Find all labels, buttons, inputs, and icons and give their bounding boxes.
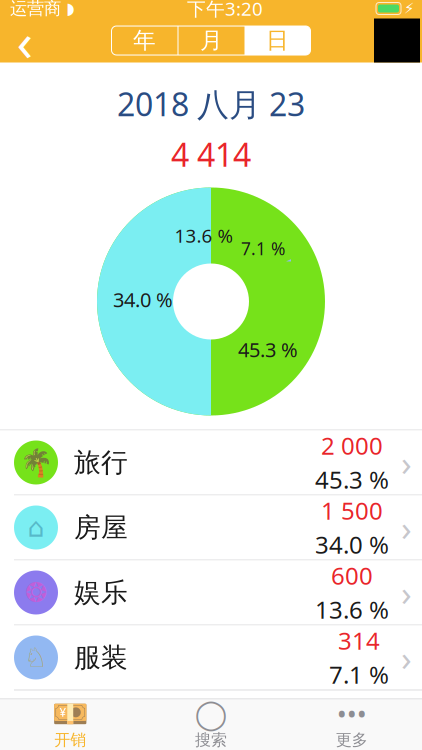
button[interactable]: 🌴	[0, 430, 422, 495]
button[interactable]: ◯	[141, 699, 281, 750]
staticText: 房屋	[74, 511, 128, 544]
staticText: ❂	[25, 577, 47, 608]
button[interactable]: 年	[111, 26, 177, 55]
staticText: 4 414	[171, 133, 251, 175]
button[interactable]: •••	[281, 699, 422, 750]
staticText: 600	[331, 560, 373, 591]
staticText: ◗	[66, 0, 74, 18]
staticText: 日	[266, 27, 289, 54]
staticText: ♘	[24, 642, 48, 673]
staticText: ›	[401, 504, 412, 550]
staticText: 7.1 %	[329, 658, 389, 690]
staticText: 旅行	[74, 446, 128, 479]
staticText: ‹	[16, 5, 33, 76]
staticText: 运营商	[10, 0, 61, 19]
staticText: 年	[133, 27, 156, 54]
button[interactable]: 日	[244, 26, 310, 55]
staticText: 开销	[54, 730, 86, 750]
staticText: 月	[200, 27, 223, 54]
staticText: 1 500	[321, 495, 383, 526]
button[interactable]: 💴	[0, 699, 141, 750]
staticText: 娱乐	[74, 576, 128, 609]
staticText: 13.6 %	[174, 223, 233, 248]
staticText: •••	[337, 696, 367, 732]
staticText: 2 000	[321, 430, 383, 461]
staticText: 2018 八月 23	[117, 82, 305, 125]
staticText: ›	[401, 569, 412, 615]
staticText: 13.6 %	[315, 593, 389, 625]
staticText: ⚡︎	[404, 0, 414, 17]
staticText: 搜索	[195, 730, 227, 750]
staticText: ◯	[194, 697, 227, 731]
staticText: ⌂	[27, 512, 44, 543]
button[interactable]: ⌂	[0, 495, 422, 560]
staticText: 🌴	[19, 447, 52, 478]
staticText: ›	[401, 439, 412, 485]
staticText: 7.1 %	[241, 237, 285, 260]
staticText: ›	[401, 634, 412, 680]
staticText: 45.3 %	[238, 336, 298, 363]
staticText: 更多	[336, 730, 368, 750]
staticText: 服装	[74, 641, 128, 674]
staticText: 34.0 %	[113, 286, 173, 313]
staticText: 💴	[52, 697, 89, 731]
button[interactable]: 月	[178, 26, 244, 55]
staticText: 314	[338, 625, 380, 656]
staticText: 下午3:20	[187, 0, 263, 21]
button[interactable]: ♘	[0, 625, 422, 690]
button[interactable]: ❂	[0, 560, 422, 625]
staticText: 34.0 %	[315, 528, 389, 560]
button[interactable]: Back	[2, 18, 48, 62]
staticText: 45.3 %	[315, 463, 389, 495]
